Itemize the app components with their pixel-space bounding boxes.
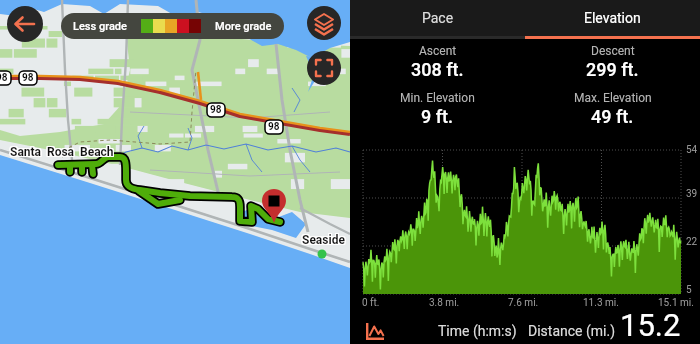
staticText: 11.3 mi. xyxy=(583,297,619,309)
staticText: 39 xyxy=(686,188,698,200)
staticText: More grade xyxy=(215,20,272,33)
staticText: Seaside xyxy=(302,233,345,247)
staticText: Santa Rosa Beach xyxy=(10,145,114,159)
staticText: 308 ft. xyxy=(411,59,464,80)
staticText: Less grade xyxy=(73,20,127,33)
staticText: Distance (mi.) xyxy=(528,323,616,339)
staticText: Time (h:m:s) xyxy=(438,323,517,339)
staticText: Seaside xyxy=(303,233,346,247)
button[interactable]: Fullscreen xyxy=(307,51,341,85)
staticText: 0 ft. xyxy=(362,297,380,309)
staticText: Santa Rosa Beach xyxy=(11,145,115,159)
staticText: 98 xyxy=(268,121,280,133)
staticText: Seaside xyxy=(303,234,346,248)
button[interactable]: Map layers xyxy=(307,6,341,40)
staticText: Santa Rosa Beach xyxy=(10,146,114,160)
staticText: 15.2 xyxy=(620,307,681,343)
staticText: Seaside xyxy=(302,232,345,246)
staticText: 54 xyxy=(686,144,698,156)
staticText: 98 xyxy=(22,72,34,84)
staticText: Descent xyxy=(591,44,635,58)
staticText: 5 xyxy=(686,284,692,296)
staticText: Seaside xyxy=(301,234,344,248)
staticText: Santa Rosa Beach xyxy=(9,144,113,158)
staticText: Santa Rosa Beach xyxy=(10,144,114,158)
button[interactable]: Less grade xyxy=(61,13,284,39)
staticText: 7.6 mi. xyxy=(508,297,539,309)
staticText: Santa Rosa Beach xyxy=(9,146,113,160)
staticText: Min. Elevation xyxy=(400,91,475,105)
button[interactable]: Elevation xyxy=(525,0,700,36)
staticText: 3.8 mi. xyxy=(429,297,460,309)
button[interactable]: Pace xyxy=(350,0,525,36)
button[interactable]: Back xyxy=(7,6,43,42)
staticText: 15.1 mi. xyxy=(658,297,694,309)
button[interactable]: Chart type xyxy=(362,317,388,343)
staticText: 299 ft. xyxy=(586,59,639,80)
staticText: Seaside xyxy=(301,233,344,247)
staticText: 98 xyxy=(210,104,222,116)
staticText: Santa Rosa Beach xyxy=(11,146,115,160)
staticText: Seaside xyxy=(301,232,344,246)
staticText: Seaside xyxy=(303,232,346,246)
staticText: Elevation xyxy=(584,10,641,26)
staticText: Max. Elevation xyxy=(574,91,652,105)
staticText: Pace xyxy=(422,10,454,26)
staticText: Santa Rosa Beach xyxy=(11,144,115,158)
staticText: 22 xyxy=(686,236,698,248)
staticText: Santa Rosa Beach xyxy=(9,145,113,159)
staticText: Ascent xyxy=(419,44,457,58)
staticText: 49 ft. xyxy=(591,106,634,127)
staticText: Seaside xyxy=(302,234,345,248)
staticText: 98 xyxy=(0,72,8,84)
staticText: 9 ft. xyxy=(421,106,454,127)
